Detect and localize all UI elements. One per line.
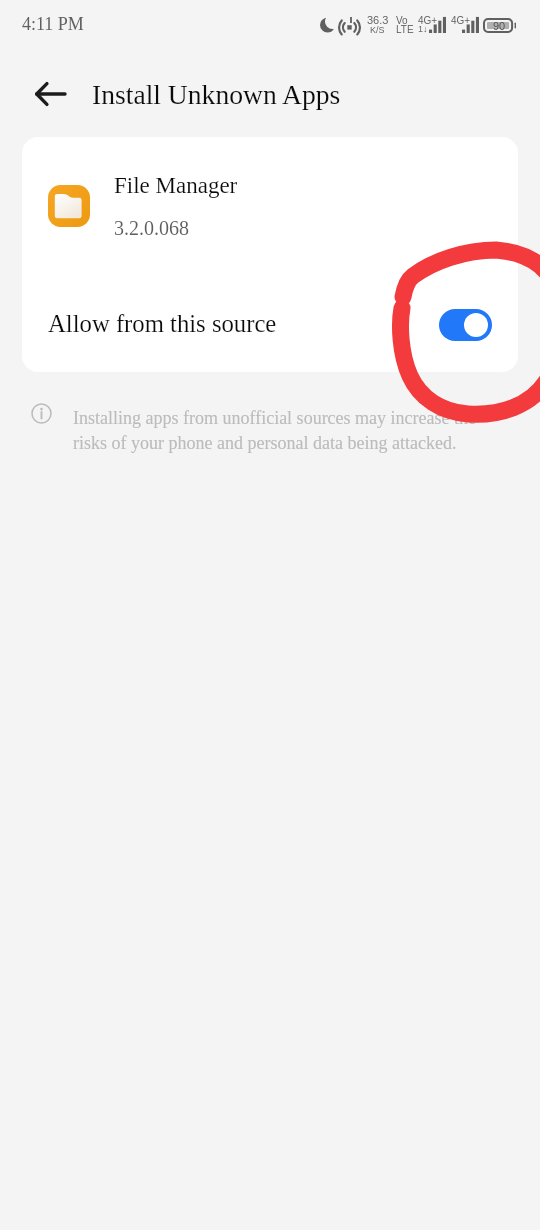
- staticText: 3.2.0.068: [114, 217, 189, 239]
- button[interactable]: File Manager: [22, 137, 518, 274]
- staticText: 36.3: [367, 14, 389, 26]
- staticText: K/S: [370, 25, 385, 35]
- staticText: 4G+: [451, 15, 471, 26]
- staticText: 4:11 PM: [22, 14, 84, 34]
- staticText: Install Unknown Apps: [92, 79, 341, 110]
- staticText: Vo: [396, 15, 408, 26]
- staticText: Allow from this source: [48, 310, 277, 337]
- staticText: 1↓: [418, 24, 428, 34]
- button[interactable]: Allow from this source toggle: [439, 309, 492, 341]
- staticText: File Manager: [114, 173, 238, 198]
- button[interactable]: Allow from this source: [22, 274, 518, 372]
- staticText: 90: [493, 20, 506, 32]
- staticText: Installing apps from unofficial sources …: [73, 408, 493, 453]
- button[interactable]: Back: [27, 71, 73, 117]
- staticText: 4G+: [418, 15, 438, 26]
- staticText: LTE: [396, 24, 414, 35]
